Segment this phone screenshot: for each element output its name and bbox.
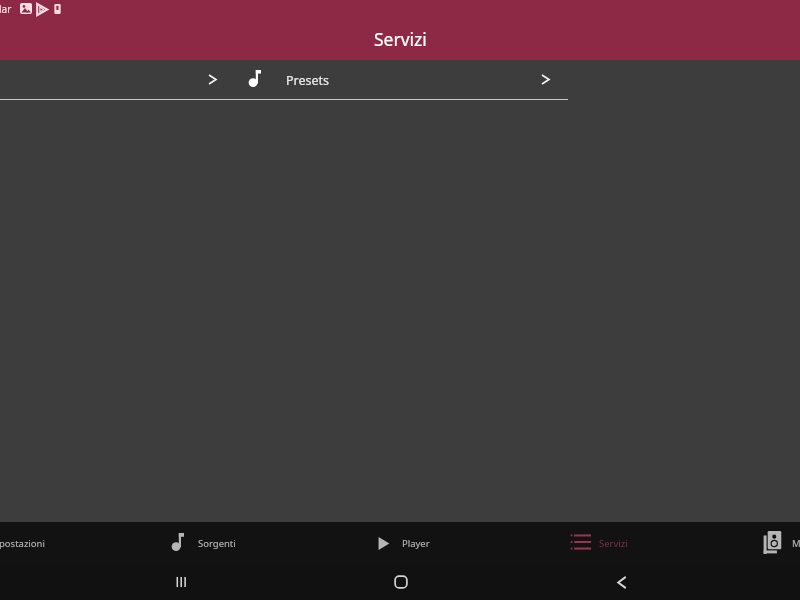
button[interactable]: Recents — [157, 564, 205, 600]
staticText: Servizi — [374, 27, 427, 51]
button[interactable]: Sorgenti — [100, 522, 305, 564]
button[interactable]: Servizi — [505, 522, 705, 564]
staticText: Sorgenti — [198, 537, 236, 550]
staticText: Player — [402, 537, 430, 550]
staticText: lar — [0, 2, 12, 16]
button[interactable]: Player — [305, 522, 505, 564]
button[interactable]: Next — [529, 62, 563, 98]
button[interactable]: Back — [597, 564, 645, 600]
button[interactable]: Presets — [240, 62, 335, 98]
staticText: Servizi — [599, 537, 628, 550]
staticText: M — [792, 537, 800, 550]
staticText: postazioni — [0, 537, 45, 550]
button[interactable]: Previous — [196, 62, 230, 98]
staticText: Presets — [286, 72, 330, 89]
button[interactable]: M — [705, 522, 800, 564]
button[interactable]: postazioni — [0, 522, 100, 564]
button[interactable]: Home — [377, 564, 425, 600]
